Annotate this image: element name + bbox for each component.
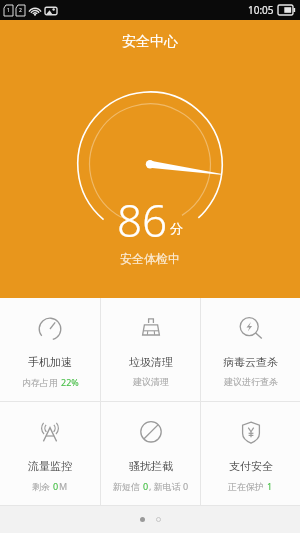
staticText: 10:05 bbox=[248, 3, 274, 17]
staticText: 流量监控 bbox=[28, 459, 72, 473]
staticText: 22% bbox=[61, 376, 79, 388]
staticText: 建议进行查杀 bbox=[224, 376, 278, 387]
button[interactable]: 流量监控 bbox=[0, 402, 100, 505]
button[interactable]: 骚扰拦截 bbox=[101, 402, 200, 505]
staticText: 分 bbox=[170, 220, 183, 236]
staticText: 垃圾清理 bbox=[129, 355, 173, 369]
staticText: 正在保护 bbox=[228, 480, 267, 492]
staticText: 2 bbox=[19, 7, 22, 14]
staticText: 支付安全 bbox=[229, 459, 273, 473]
staticText: 骚扰拦截 bbox=[129, 459, 173, 473]
staticText: 1 bbox=[7, 7, 10, 14]
staticText: M bbox=[59, 480, 68, 492]
button[interactable]: 病毒云查杀 bbox=[201, 298, 300, 401]
button[interactable]: 支付安全 bbox=[201, 402, 300, 505]
staticText: 内存占用 bbox=[22, 376, 61, 388]
staticText: 手机加速 bbox=[28, 355, 72, 369]
button[interactable]: 手机加速 bbox=[0, 298, 100, 401]
staticText: 剩余 bbox=[32, 480, 53, 492]
staticText: 安全体检中 bbox=[120, 251, 180, 266]
staticText: 0 bbox=[143, 480, 149, 492]
staticText: 安全中心 bbox=[122, 33, 178, 51]
staticText: 病毒云查杀 bbox=[223, 355, 278, 369]
staticText: 86 bbox=[117, 190, 168, 250]
button[interactable]: 垃圾清理 bbox=[101, 298, 200, 401]
staticText: 新短信 bbox=[113, 480, 143, 492]
staticText: 建议清理 bbox=[133, 376, 169, 387]
staticText: 1 bbox=[267, 480, 273, 492]
staticText: , 新电话 0 bbox=[149, 480, 189, 492]
staticText: 0 bbox=[53, 480, 59, 492]
